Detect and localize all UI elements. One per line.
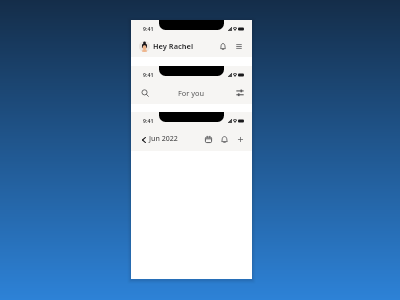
staticText: Hey Rachel — [153, 41, 194, 51]
button[interactable]: Filter — [233, 86, 246, 99]
button[interactable]: Profile — [139, 41, 150, 52]
staticText: 9:41 — [143, 117, 154, 124]
button[interactable]: Calendar — [202, 133, 214, 145]
button[interactable]: Back — [138, 134, 149, 145]
button[interactable]: Notifications — [218, 133, 230, 145]
button[interactable]: Search — [138, 86, 151, 99]
staticText: For you — [178, 88, 205, 98]
staticText: Jun 2022 — [149, 134, 178, 144]
button[interactable]: Notifications — [216, 39, 230, 53]
staticText: 9:41 — [143, 71, 154, 78]
button[interactable]: Menu — [232, 39, 246, 53]
staticText: 9:41 — [143, 25, 154, 32]
button[interactable]: Add — [234, 133, 246, 145]
